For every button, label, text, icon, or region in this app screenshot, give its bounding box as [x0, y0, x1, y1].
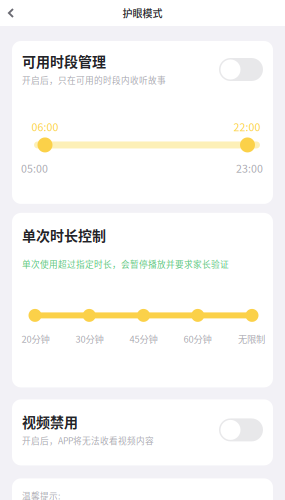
- staticText: 22:00: [233, 119, 260, 134]
- staticText: 单次时长控制: [22, 225, 106, 245]
- staticText: 06:00: [31, 119, 58, 134]
- button[interactable]: 返回: [0, 0, 22, 26]
- button[interactable]: 20分钟: [15, 332, 55, 345]
- staticText: 视频禁用: [22, 411, 78, 432]
- staticText: 无限制: [238, 332, 265, 345]
- button[interactable]: 视频禁用: [219, 418, 263, 441]
- button[interactable]: 可用时段管理: [219, 58, 263, 81]
- staticText: 20分钟: [21, 332, 49, 345]
- button[interactable]: 60分钟: [177, 332, 217, 345]
- staticText: 单次使用超过指定时长，会暂停播放并要求家长验证: [22, 258, 229, 270]
- button[interactable]: 无限制: [231, 332, 271, 345]
- staticText: 温馨提示:: [22, 489, 60, 500]
- staticText: 60分钟: [183, 332, 211, 345]
- staticText: 05:00: [21, 160, 48, 176]
- staticText: 45分钟: [129, 332, 157, 345]
- button[interactable]: 30分钟: [69, 332, 109, 345]
- staticText: 开启后，只在可用的时段内收听故事: [22, 74, 166, 86]
- button[interactable]: 45分钟: [123, 332, 163, 345]
- staticText: 护眼模式: [122, 6, 162, 20]
- staticText: 开启后，APP将无法收看视频内容: [22, 434, 154, 447]
- staticText: 可用时段管理: [22, 51, 106, 71]
- staticText: 30分钟: [75, 332, 103, 345]
- staticText: 23:00: [236, 160, 263, 176]
